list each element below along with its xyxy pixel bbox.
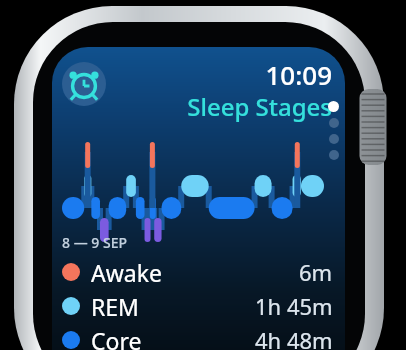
button[interactable]: REM — [56, 290, 341, 322]
staticText: 10:09 — [232, 57, 332, 92]
staticText: Core — [91, 325, 142, 350]
staticText: 4h 48m — [255, 325, 333, 350]
staticText: 8 — 9 SEP — [62, 233, 127, 252]
staticText: 1h 45m — [255, 291, 333, 321]
staticText: REM — [91, 291, 139, 322]
staticText: 6m — [299, 257, 333, 287]
button[interactable]: Alarm — [62, 62, 106, 106]
button[interactable]: Sleep Stages — [162, 90, 332, 123]
button[interactable]: Awake — [56, 256, 341, 288]
button[interactable]: Core — [56, 324, 341, 350]
staticText: Awake — [91, 257, 162, 288]
